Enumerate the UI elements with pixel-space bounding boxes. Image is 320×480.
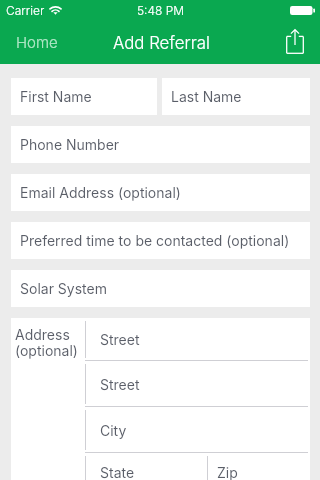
button[interactable]: Home [0, 22, 68, 64]
staticText: Street [100, 331, 140, 348]
staticText: Email Address (optional) [20, 184, 181, 201]
staticText: Solar System [20, 280, 107, 297]
button[interactable]: Street [85, 318, 310, 361]
button[interactable]: Preferred time to be contacted (optional… [11, 222, 310, 259]
staticText: Phone Number [20, 136, 120, 153]
button[interactable]: Solar System [11, 270, 310, 307]
staticText: Street [100, 376, 140, 393]
button[interactable]: Zip [207, 453, 310, 480]
staticText: Carrier [6, 3, 45, 18]
staticText: State [100, 464, 135, 480]
staticText: Home [16, 33, 58, 51]
button[interactable]: Street [85, 361, 310, 407]
staticText: 5:48 PM [137, 3, 185, 18]
button[interactable]: First Name [11, 78, 157, 115]
staticText: City [100, 422, 127, 439]
staticText: Last Name [171, 88, 242, 105]
button[interactable]: State [85, 453, 207, 480]
button[interactable]: Last Name [162, 78, 310, 115]
button[interactable]: City [85, 407, 310, 453]
staticText: Address (optional) [15, 326, 78, 359]
staticText: Zip [217, 464, 238, 480]
staticText: Preferred time to be contacted (optional… [20, 232, 290, 249]
staticText: Add Referral [113, 33, 210, 53]
button[interactable]: Phone Number [11, 126, 310, 163]
button[interactable]: Email Address (optional) [11, 174, 310, 211]
staticText: First Name [20, 88, 92, 105]
button[interactable]: Share [280, 22, 320, 64]
